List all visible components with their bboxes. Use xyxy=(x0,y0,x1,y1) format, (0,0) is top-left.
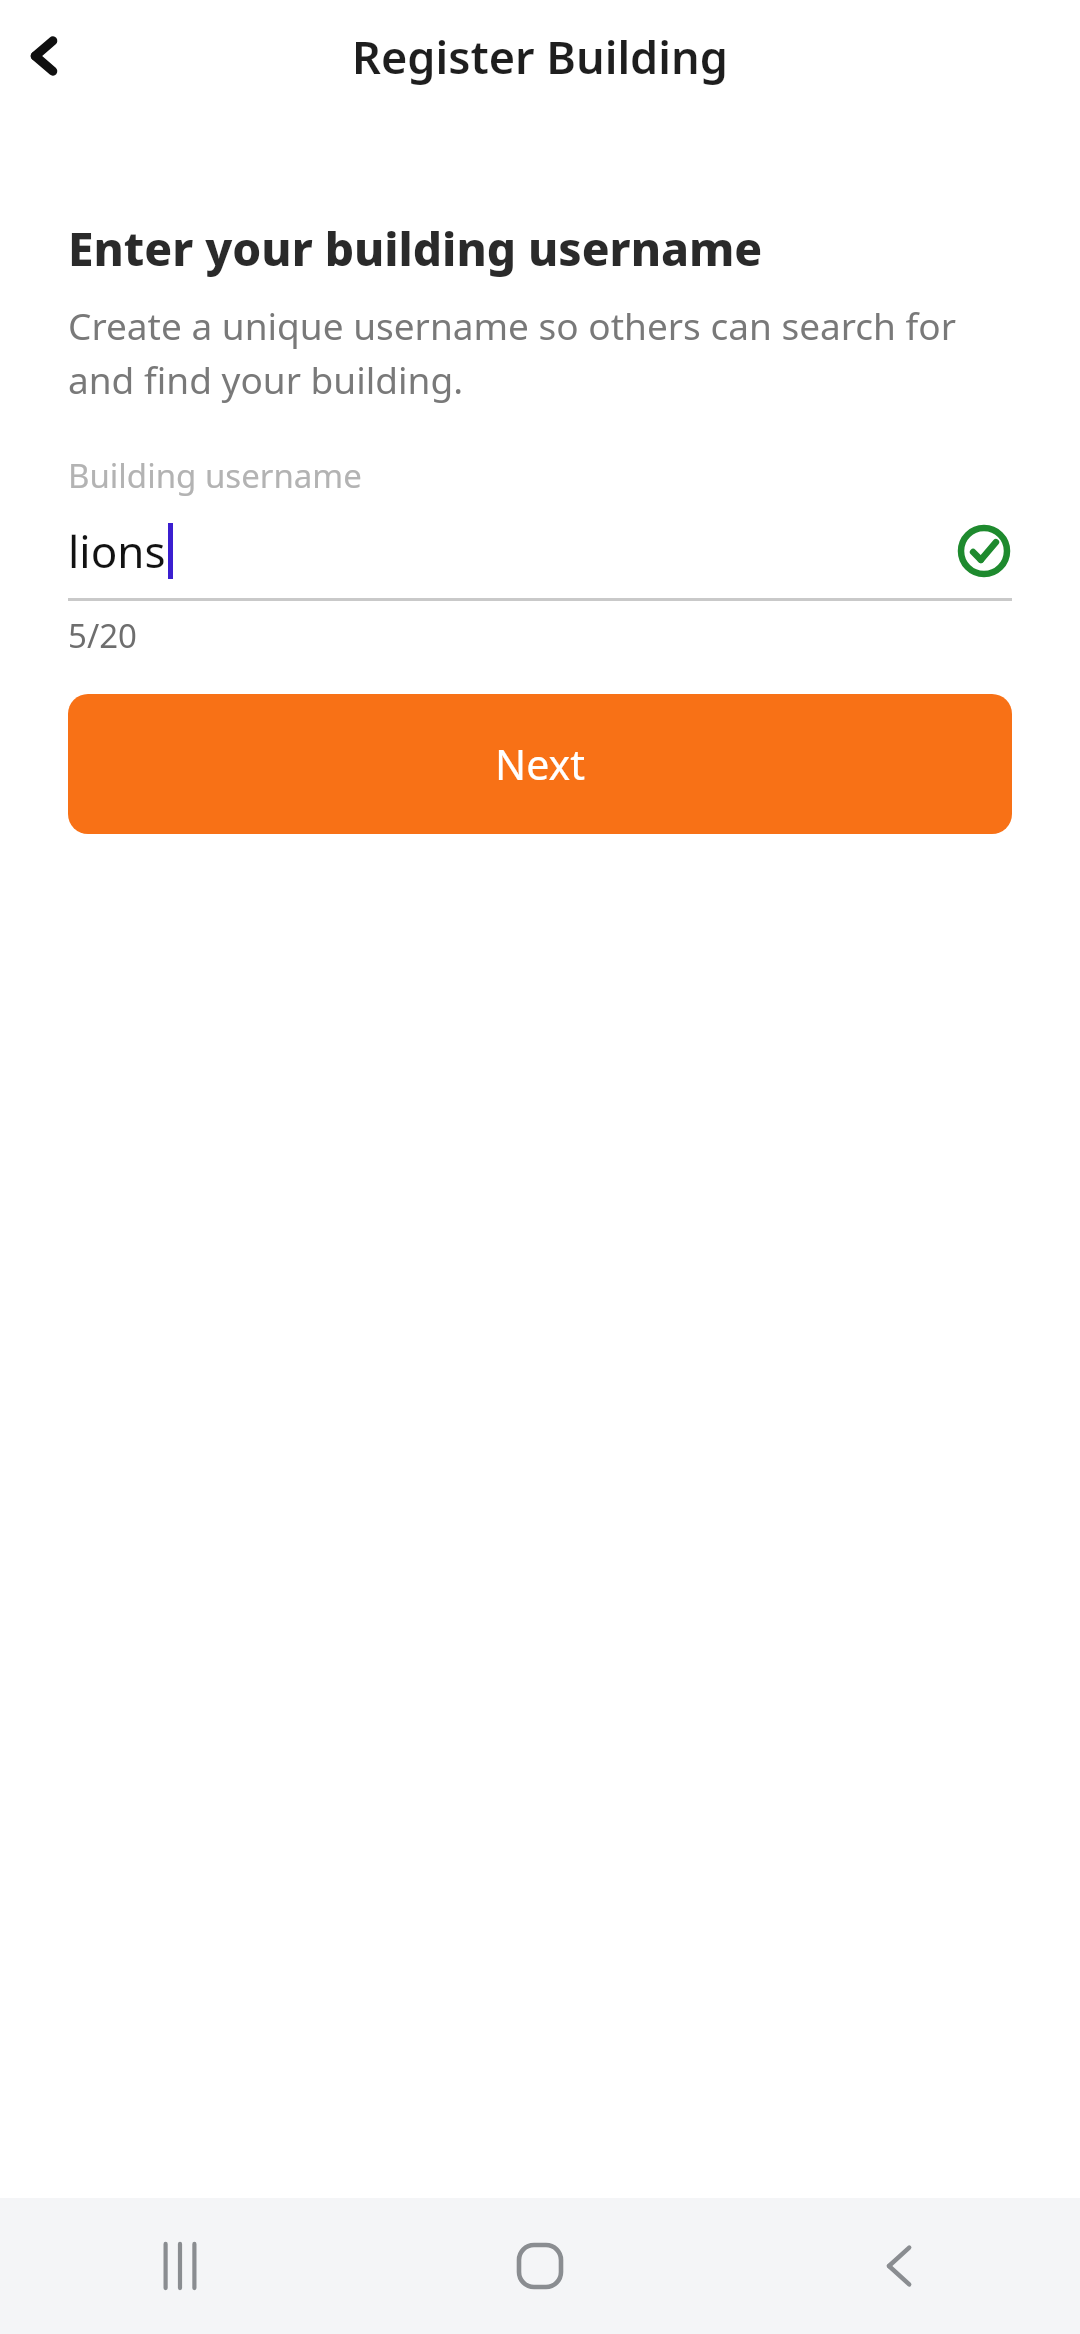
button[interactable]: lions xyxy=(68,512,1012,590)
button[interactable]: Next xyxy=(68,694,1012,834)
staticText: Building username xyxy=(68,453,362,498)
button[interactable]: Username available xyxy=(956,523,1012,579)
staticText: 5/20 xyxy=(68,613,137,658)
staticText: lions xyxy=(68,521,166,581)
button[interactable]: Home xyxy=(360,2198,720,2334)
staticText: Create a unique username so others can s… xyxy=(68,300,1022,405)
button[interactable]: Back xyxy=(720,2198,1080,2334)
button[interactable]: Back xyxy=(8,16,88,96)
staticText: Enter your building username xyxy=(68,217,763,280)
staticText: Next xyxy=(495,736,585,792)
staticText: Register Building xyxy=(0,26,1080,87)
button[interactable]: Recent apps xyxy=(0,2198,360,2334)
